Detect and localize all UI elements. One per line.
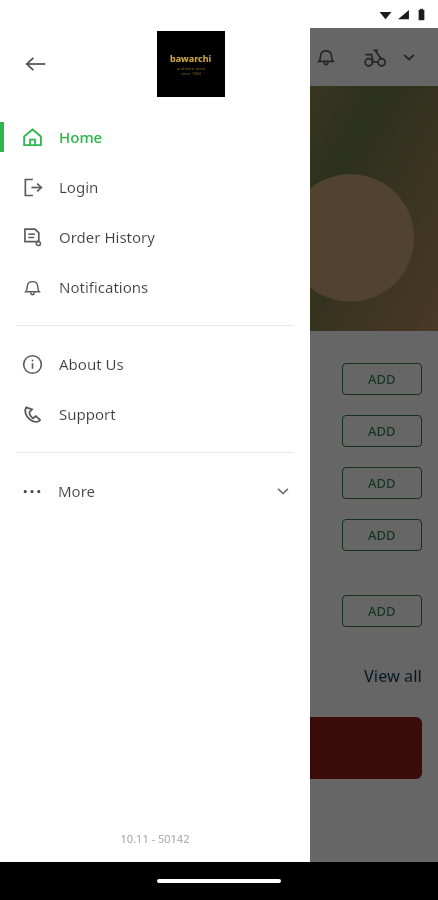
staticText: authentic taste: [177, 66, 206, 71]
staticText: Order History: [59, 227, 155, 247]
staticText: View all: [364, 665, 422, 687]
staticText: Tasty Item: [16, 422, 84, 441]
button[interactable]: Delivery mode: [354, 37, 394, 77]
button[interactable]: ADD: [342, 519, 422, 551]
staticText: Notifications: [59, 277, 149, 297]
button[interactable]: Login: [0, 162, 310, 212]
button[interactable]: View all: [16, 665, 422, 687]
staticText: Tasty Item: [16, 474, 84, 493]
button[interactable]: About Us: [0, 339, 310, 389]
staticText: ADD: [368, 422, 396, 440]
staticText: bawarchi: [170, 52, 212, 64]
staticText: About Us: [59, 354, 124, 374]
button[interactable]: Notifications: [306, 37, 346, 77]
staticText: ADD: [368, 526, 396, 544]
button[interactable]: bawarchi: [157, 31, 225, 97]
button[interactable]: ADD: [342, 363, 422, 395]
staticText: Login: [59, 177, 99, 197]
button[interactable]: Tasty Item: [0, 509, 438, 561]
staticText: ADD: [368, 474, 396, 492]
staticText: More: [58, 481, 96, 501]
staticText: Tasty Item: [16, 370, 84, 389]
staticText: ADD: [368, 370, 396, 388]
button[interactable]: Tasty Item: [0, 579, 438, 643]
button[interactable]: Notifications: [0, 262, 310, 312]
button[interactable]: ADD: [342, 415, 422, 447]
button[interactable]: More: [0, 466, 310, 516]
button[interactable]: Tasty Item: [0, 457, 438, 509]
button[interactable]: Tasty Item: [0, 353, 438, 405]
button[interactable]: Back: [14, 42, 58, 86]
button[interactable]: ADD: [342, 467, 422, 499]
button[interactable]: Tasty Item: [0, 405, 438, 457]
button[interactable]: ADD: [342, 595, 422, 627]
staticText: ADD: [368, 602, 396, 620]
staticText: Home: [59, 127, 103, 147]
button[interactable]: Expand: [394, 42, 424, 72]
button[interactable]: Home: [0, 112, 310, 162]
button[interactable]: Order History: [0, 212, 310, 262]
button[interactable]: Support: [0, 389, 310, 439]
button[interactable]: [16, 717, 422, 779]
staticText: Support: [59, 404, 116, 424]
staticText: 10.11 - 50142: [0, 831, 310, 846]
staticText: since 1984: [181, 71, 201, 76]
